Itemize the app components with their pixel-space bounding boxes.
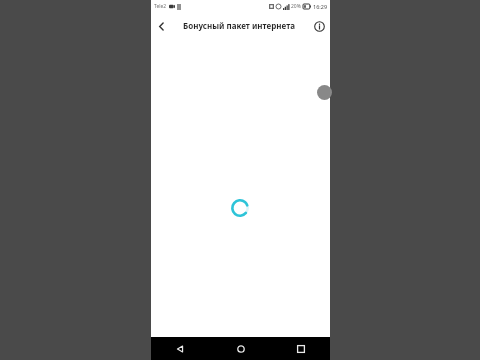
staticText: 16:29 bbox=[313, 3, 328, 10]
button[interactable]: Помощник bbox=[317, 85, 332, 100]
staticText: Бонусный пакет интернета bbox=[183, 20, 295, 31]
button[interactable]: Назад bbox=[169, 338, 191, 360]
button[interactable]: Назад bbox=[151, 16, 171, 36]
button[interactable]: Домой bbox=[230, 338, 252, 360]
staticText: Tele2 bbox=[154, 3, 167, 10]
button[interactable]: Информация bbox=[310, 17, 328, 35]
staticText: 20% bbox=[291, 3, 301, 10]
button[interactable]: Недавние приложения bbox=[290, 338, 312, 360]
